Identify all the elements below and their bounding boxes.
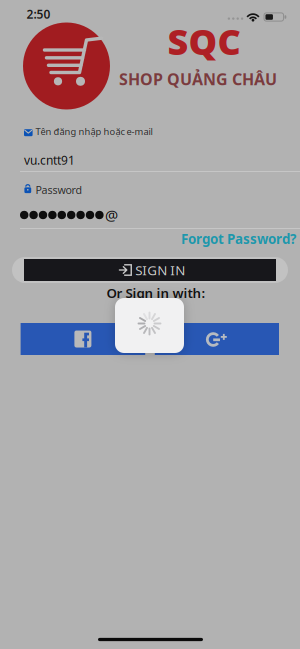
staticText: Tên đăng nhập hoặc e-mail [35, 125, 152, 138]
staticText: SQC [167, 17, 240, 65]
staticText: Forgot Password? [181, 230, 296, 248]
staticText: @ [105, 205, 118, 225]
button[interactable] [21, 323, 145, 355]
staticText: Or Sign in with: [106, 284, 205, 302]
staticText: 2:50 [26, 6, 50, 22]
staticText: Password [35, 183, 82, 197]
staticText: vu.cntt91 [24, 152, 75, 168]
staticText: SIGN IN [135, 261, 185, 279]
staticText: SHOP QUẢNG CHÂU [119, 68, 277, 90]
button[interactable] [155, 323, 279, 355]
button[interactable]: SIGN IN [12, 257, 288, 283]
button[interactable]: Forgot Password? [181, 230, 296, 248]
